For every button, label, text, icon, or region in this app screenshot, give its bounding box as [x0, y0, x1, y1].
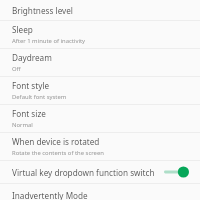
button[interactable]: When device is rotated: [0, 133, 200, 160]
button[interactable]: Font style: [0, 77, 200, 104]
button[interactable]: Virtual key dropdown function switch: [0, 161, 200, 183]
staticText: Sleep: [12, 24, 33, 35]
button[interactable]: Toggle virtual key dropdown function swi…: [164, 165, 190, 179]
staticText: Daydream: [12, 52, 52, 63]
staticText: Font size: [12, 108, 46, 119]
button[interactable]: Font size: [0, 105, 200, 132]
staticText: When device is rotated: [12, 136, 100, 147]
staticText: Font style: [12, 80, 50, 91]
staticText: Off: [12, 65, 21, 73]
button[interactable]: Daydream: [0, 49, 200, 76]
staticText: Default font system: [12, 93, 67, 101]
staticText: Virtual key dropdown function switch: [12, 167, 155, 178]
button[interactable]: Sleep: [0, 21, 200, 48]
staticText: Brightness level: [12, 5, 73, 16]
staticText: After 1 minute of inactivity: [12, 37, 86, 45]
staticText: Rotate the contents of the screen: [12, 149, 104, 157]
button[interactable]: Inadvertently Mode: [0, 184, 200, 200]
staticText: Normal: [12, 121, 33, 129]
button[interactable]: Brightness level: [0, 0, 200, 20]
staticText: Inadvertently Mode: [12, 190, 88, 200]
